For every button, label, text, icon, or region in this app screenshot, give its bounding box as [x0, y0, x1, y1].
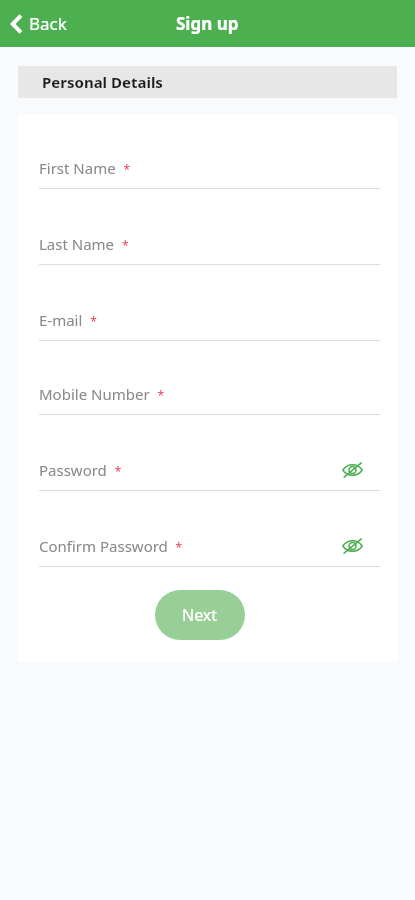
staticText: Password * [39, 460, 122, 480]
button[interactable]: Show password [330, 526, 374, 566]
staticText: E-mail * [39, 310, 97, 330]
button[interactable]: Back [8, 0, 67, 47]
staticText: Confirm Password * [39, 536, 183, 556]
button[interactable]: Confirm Password * [39, 526, 380, 566]
staticText: Mobile Number * [39, 384, 164, 404]
button[interactable]: E-mail * [39, 300, 380, 340]
button[interactable]: Last Name * [39, 224, 380, 264]
button[interactable]: Password * [39, 450, 380, 490]
staticText: Back [29, 12, 67, 35]
staticText: Sign up [176, 12, 239, 35]
staticText: First Name * [39, 158, 131, 178]
button[interactable]: Next [155, 590, 245, 640]
staticText: Last Name * [39, 234, 129, 254]
button[interactable]: Mobile Number * [39, 374, 380, 414]
button[interactable]: First Name * [39, 148, 380, 188]
staticText: Personal Details [42, 72, 163, 92]
staticText: Next [182, 604, 218, 626]
button[interactable]: Show password [330, 450, 374, 490]
